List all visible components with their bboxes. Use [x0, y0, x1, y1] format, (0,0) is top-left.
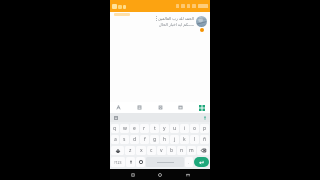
- button[interactable]: h: [160, 135, 169, 144]
- staticText: r: [143, 125, 146, 132]
- button[interactable]: c: [147, 146, 156, 155]
- staticText: t: [154, 125, 156, 132]
- button[interactable]: Back: [128, 170, 138, 180]
- button[interactable]: Backspace: [197, 146, 209, 155]
- staticText: j: [174, 136, 176, 143]
- staticText: o: [193, 125, 197, 132]
- staticText: i: [184, 125, 186, 132]
- staticText: c: [150, 147, 153, 154]
- staticText: s: [123, 136, 126, 143]
- button[interactable]: Voice input: [202, 115, 207, 120]
- button[interactable]: GIF: [177, 104, 184, 111]
- staticText: n: [180, 147, 184, 154]
- button[interactable]: .: [185, 157, 193, 167]
- button[interactable]: b: [167, 146, 176, 155]
- button[interactable]: Profile photo: [196, 16, 207, 32]
- button[interactable]: Clipboard: [136, 104, 143, 111]
- button[interactable]: ?123: [111, 157, 125, 167]
- button[interactable]: n: [177, 146, 186, 155]
- staticText: v: [160, 147, 163, 154]
- staticText: الحمد لله رب العالمين: [114, 16, 194, 21]
- staticText: k: [183, 136, 186, 143]
- button[interactable]: q: [111, 124, 119, 133]
- button[interactable]: Sticker: [157, 104, 164, 111]
- staticText: w: [123, 125, 127, 132]
- button[interactable]: e: [130, 124, 139, 133]
- staticText: ñ: [203, 136, 207, 143]
- button[interactable]: Translate: [115, 104, 122, 111]
- button[interactable]: Recent apps: [183, 170, 193, 180]
- button[interactable]: z: [125, 146, 135, 155]
- button[interactable]: x: [136, 146, 146, 155]
- button[interactable]: More options: [156, 16, 157, 21]
- staticText: p: [203, 125, 207, 132]
- button[interactable]: Emoji: [136, 157, 145, 167]
- button[interactable]: Keyboard apps: [198, 104, 205, 111]
- staticText: x: [140, 147, 143, 154]
- button[interactable]: m: [187, 146, 196, 155]
- button[interactable]: o: [190, 124, 199, 133]
- staticText: h: [163, 136, 167, 143]
- button[interactable]: Voice typing: [126, 157, 135, 167]
- button[interactable]: ñ: [200, 135, 209, 144]
- staticText: u: [173, 125, 177, 132]
- staticText: z: [129, 147, 132, 154]
- staticText: m: [189, 147, 194, 154]
- staticText: q: [113, 125, 117, 132]
- button[interactable]: a: [111, 135, 119, 144]
- button[interactable]: t: [150, 124, 159, 133]
- button[interactable]: k: [180, 135, 189, 144]
- staticText: d: [133, 136, 137, 143]
- button[interactable]: الحمد لله رب العالمين: [114, 16, 194, 27]
- staticText: g: [153, 136, 157, 143]
- button[interactable]: g: [150, 135, 159, 144]
- button[interactable]: r: [140, 124, 149, 133]
- button[interactable]: y: [160, 124, 169, 133]
- button[interactable]: l: [190, 135, 199, 144]
- button[interactable]: f: [140, 135, 149, 144]
- staticText: .: [188, 160, 190, 165]
- button[interactable]: Home: [155, 170, 165, 180]
- staticText: b: [170, 147, 174, 154]
- staticText: ـــــكم ايه اخبار الحال: [114, 22, 194, 27]
- staticText: y: [163, 125, 166, 132]
- button[interactable]: Send: [194, 157, 209, 167]
- staticText: a: [114, 136, 117, 143]
- button[interactable]: u: [170, 124, 179, 133]
- button[interactable]: p: [200, 124, 209, 133]
- button[interactable]: Emoji suggestion: [113, 115, 118, 120]
- staticText: e: [133, 125, 136, 132]
- button[interactable]: s: [120, 135, 129, 144]
- button[interactable]: i: [180, 124, 189, 133]
- staticText: ?123: [114, 160, 122, 165]
- button[interactable]: Space: [146, 157, 184, 167]
- staticText: f: [144, 136, 146, 143]
- button[interactable]: d: [130, 135, 139, 144]
- button[interactable]: j: [170, 135, 179, 144]
- button[interactable]: w: [120, 124, 129, 133]
- staticText: l: [194, 136, 196, 143]
- button[interactable]: v: [157, 146, 166, 155]
- button[interactable]: Shift: [111, 146, 124, 155]
